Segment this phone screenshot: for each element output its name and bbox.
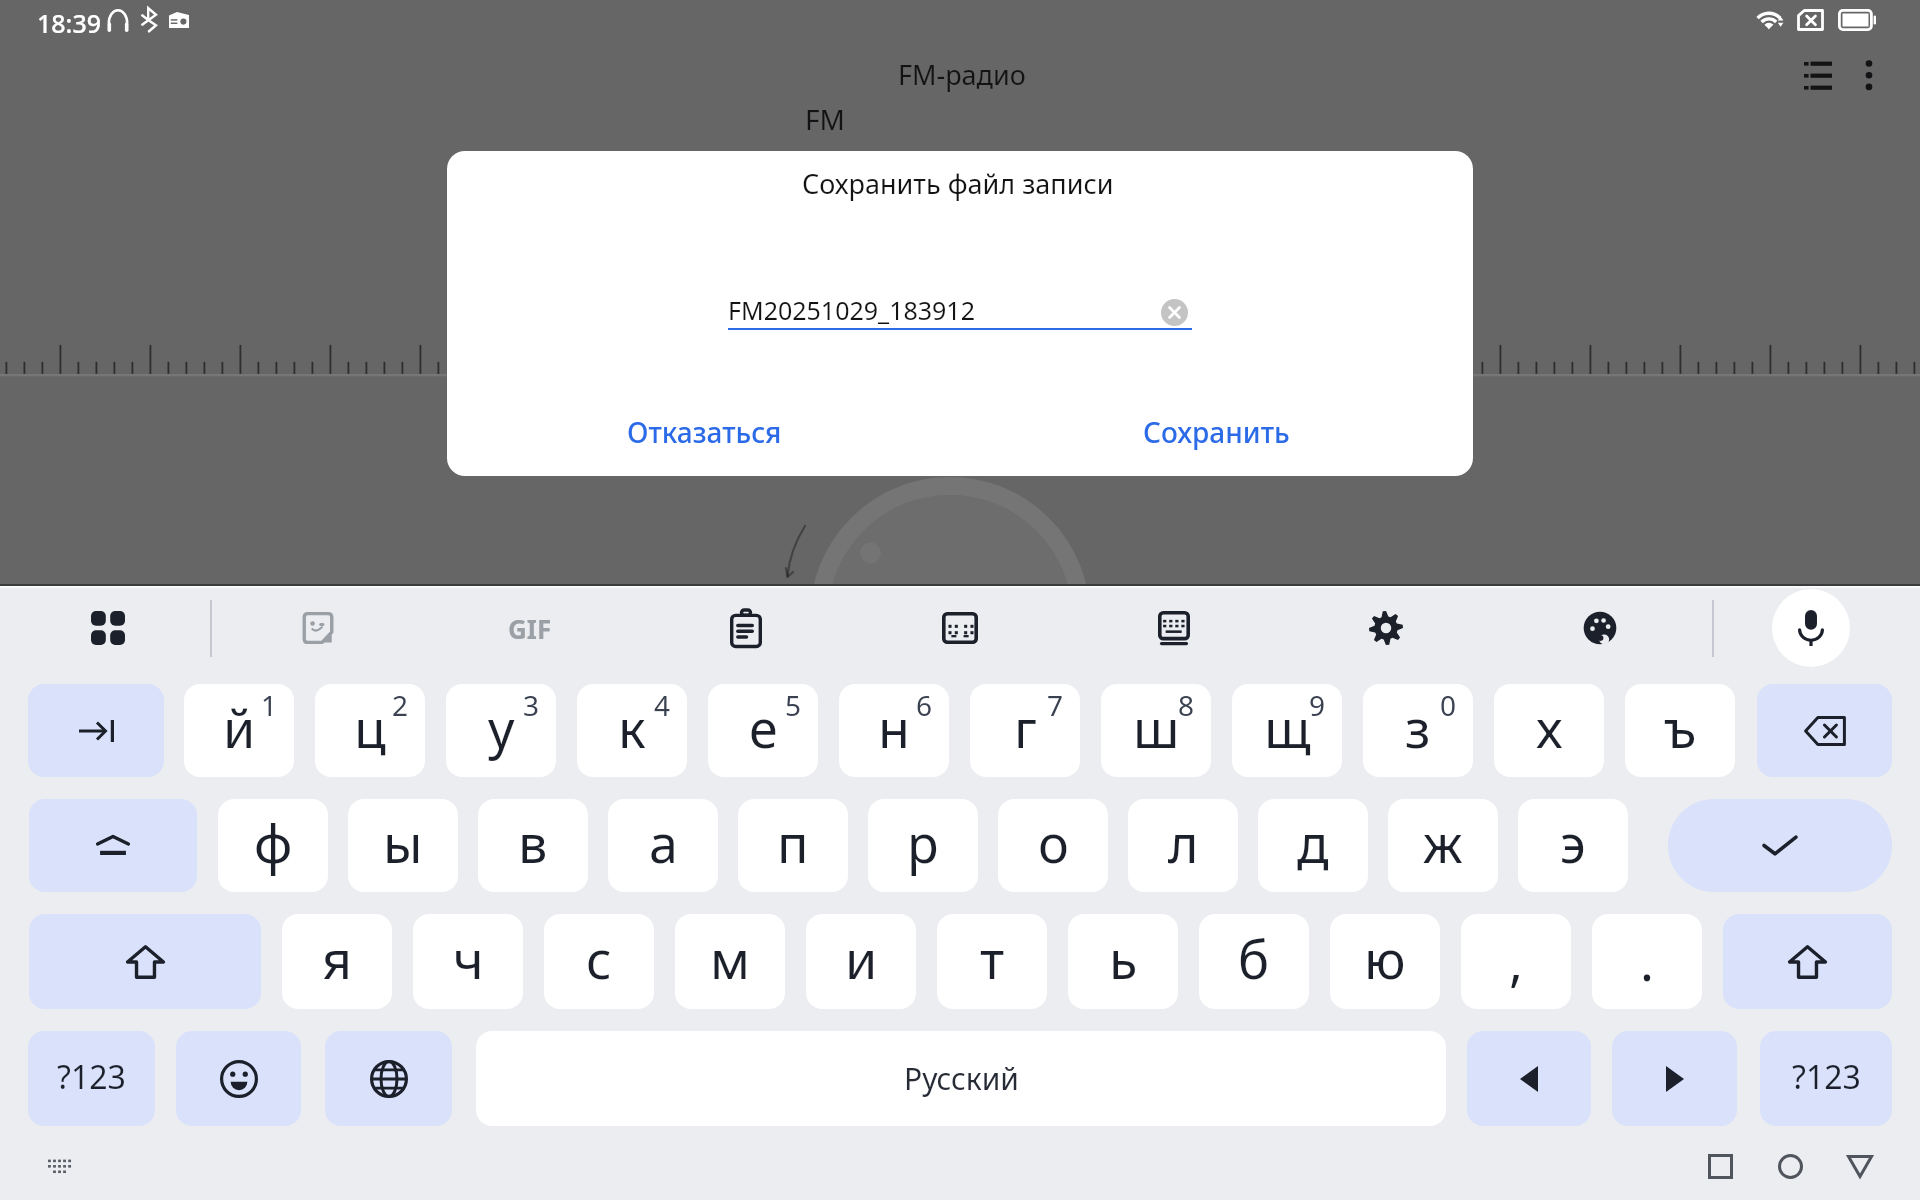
button[interactable]: Отказаться [611, 401, 798, 463]
button[interactable]: Station list [1789, 45, 1847, 103]
button[interactable]: Recent apps [1692, 1138, 1748, 1194]
button[interactable]: х [1494, 684, 1604, 777]
staticText: 7 [1047, 686, 1064, 724]
button[interactable]: п [738, 799, 848, 892]
staticText: щ [1264, 692, 1311, 763]
button[interactable]: GIF [497, 595, 563, 661]
staticText: п [777, 807, 809, 878]
button[interactable]: и [806, 914, 916, 1009]
button[interactable]: Сохранить [1127, 401, 1306, 463]
button[interactable]: ч [413, 914, 523, 1009]
button[interactable]: Clipboard [713, 595, 779, 661]
staticText: м [710, 923, 750, 994]
button[interactable]: ъ [1625, 684, 1735, 777]
button[interactable]: Back [1832, 1138, 1888, 1194]
button[interactable]: Move cursor left [1467, 1031, 1591, 1126]
button[interactable]: Floating keyboard [1141, 595, 1207, 661]
staticText: э [1560, 807, 1586, 878]
staticText: 18:39 [37, 6, 102, 40]
staticText: и [845, 923, 878, 994]
staticText: н [878, 692, 910, 763]
staticText: GIF [508, 611, 552, 646]
button[interactable]: ш [1101, 684, 1211, 777]
button[interactable]: в [478, 799, 588, 892]
button[interactable]: . [1592, 914, 1702, 1009]
button[interactable]: Clear text [1156, 294, 1192, 330]
button[interactable]: Change language [325, 1031, 452, 1126]
button[interactable]: з [1363, 684, 1473, 777]
staticText: FM-радио [898, 56, 1026, 93]
staticText: т [980, 923, 1005, 994]
button[interactable]: а [608, 799, 718, 892]
staticText: ?123 [1792, 1055, 1861, 1099]
button[interactable]: н [839, 684, 949, 777]
staticText: ?123 [57, 1055, 126, 1099]
button[interactable]: Symbols [28, 1031, 155, 1126]
button[interactable]: я [282, 914, 392, 1009]
button[interactable]: Home [1762, 1138, 1818, 1194]
button[interactable]: б [1199, 914, 1309, 1009]
staticText: ш [1133, 692, 1180, 763]
button[interactable]: Theme [1567, 595, 1633, 661]
button[interactable]: р [868, 799, 978, 892]
staticText: а [649, 807, 678, 878]
button[interactable]: с [544, 914, 654, 1009]
staticText: ц [354, 692, 386, 763]
button[interactable]: Settings [1353, 595, 1419, 661]
button[interactable]: ж [1388, 799, 1498, 892]
button[interactable]: Tab [28, 684, 164, 777]
staticText: г [1014, 692, 1037, 763]
staticText: в [518, 807, 548, 878]
button[interactable]: Space [476, 1031, 1446, 1126]
button[interactable]: е [708, 684, 818, 777]
button[interactable]: Enter [1668, 799, 1892, 892]
staticText: ч [453, 923, 484, 994]
staticText: ю [1364, 923, 1406, 994]
staticText: ы [383, 807, 423, 878]
button[interactable]: Caps lock [29, 799, 197, 892]
button[interactable]: м [675, 914, 785, 1009]
staticText: у [488, 692, 515, 763]
button[interactable]: Keyboard layout [927, 595, 993, 661]
button[interactable]: к [577, 684, 687, 777]
staticText: 5 [785, 686, 802, 724]
staticText: 0 [1440, 686, 1457, 724]
staticText: о [1038, 807, 1069, 878]
button[interactable]: Move cursor right [1612, 1031, 1737, 1126]
staticText: х [1536, 692, 1563, 763]
button[interactable]: ь [1068, 914, 1178, 1009]
button[interactable]: г [970, 684, 1080, 777]
staticText: Сохранить [1143, 413, 1290, 451]
button[interactable]: ц [315, 684, 425, 777]
button[interactable]: ю [1330, 914, 1440, 1009]
staticText: к [618, 692, 646, 763]
button[interactable]: Symbols [1760, 1031, 1892, 1126]
staticText: з [1405, 692, 1431, 763]
button[interactable]: Hide keyboard [34, 1140, 86, 1192]
button[interactable]: More options [1840, 46, 1898, 104]
button[interactable]: э [1518, 799, 1628, 892]
button[interactable]: Stickers [285, 595, 351, 661]
button[interactable]: Apps [75, 595, 141, 661]
button[interactable]: щ [1232, 684, 1342, 777]
button[interactable]: д [1258, 799, 1368, 892]
button[interactable]: ы [348, 799, 458, 892]
button[interactable]: , [1461, 914, 1571, 1009]
button[interactable]: ф [218, 799, 328, 892]
button[interactable]: т [937, 914, 1047, 1009]
staticText: д [1297, 807, 1329, 878]
button[interactable]: о [998, 799, 1108, 892]
staticText: ь [1109, 923, 1138, 994]
staticText: й [223, 692, 256, 763]
button[interactable]: л [1128, 799, 1238, 892]
button[interactable]: Shift [29, 914, 261, 1009]
button[interactable]: й [184, 684, 294, 777]
button[interactable]: Emoji [176, 1031, 301, 1126]
button[interactable]: Voice input [1772, 589, 1850, 667]
staticText: Русский [904, 1058, 1019, 1099]
staticText: ъ [1664, 692, 1697, 763]
staticText: Сохранить файл записи [802, 165, 1114, 202]
button[interactable]: Shift [1723, 914, 1892, 1009]
button[interactable]: у [446, 684, 556, 777]
button[interactable]: Backspace [1757, 684, 1892, 777]
